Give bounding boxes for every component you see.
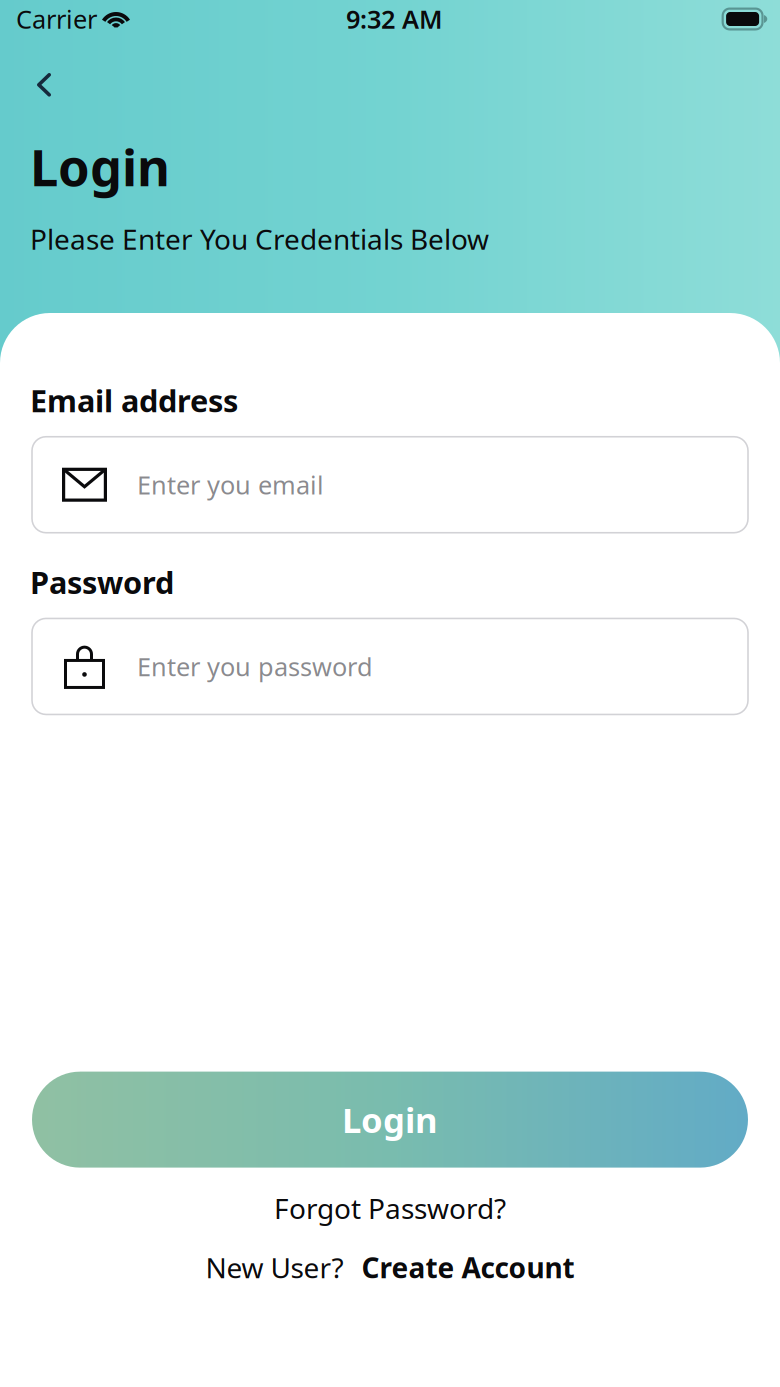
staticText: Carrier <box>16 2 97 36</box>
button[interactable]: Forgot Password? <box>32 1185 748 1232</box>
staticText: Login <box>342 1097 438 1143</box>
staticText: Please Enter You Credentials Below <box>30 220 489 257</box>
staticText: Enter you email <box>137 468 324 501</box>
staticText: Email address <box>30 380 238 421</box>
staticText: 9:32 AM <box>346 2 443 36</box>
staticText: Password <box>30 562 174 602</box>
button[interactable]: Back <box>0 66 70 104</box>
button[interactable]: Login <box>32 1072 748 1168</box>
staticText: Forgot Password? <box>274 1190 506 1227</box>
staticText: Create Account <box>361 1249 574 1286</box>
button[interactable]: Create Account <box>361 1244 574 1291</box>
staticText: Enter you password <box>137 650 373 683</box>
staticText: New User? <box>205 1249 343 1286</box>
staticText: Login <box>30 133 170 200</box>
